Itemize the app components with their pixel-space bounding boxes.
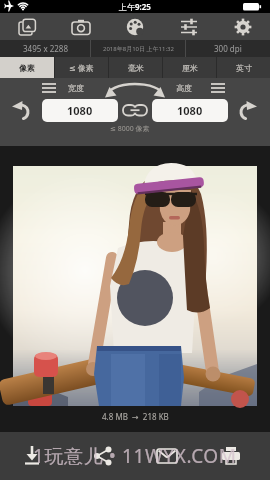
button[interactable] — [13, 166, 257, 406]
button[interactable] — [38, 80, 60, 96]
staticText: 3495 x 2288 — [23, 43, 68, 54]
staticText: 1玩意儿 • 11WYX.COM — [33, 443, 237, 469]
staticText: 像素 — [19, 63, 35, 73]
button[interactable]: 毫米 — [109, 57, 162, 78]
staticText: 4.8 MB → 218 KB — [102, 411, 169, 422]
button[interactable]: 1080 — [152, 99, 228, 122]
button[interactable] — [134, 432, 202, 480]
staticText: ≤ 8000 像素 — [110, 124, 150, 134]
button[interactable] — [216, 13, 270, 40]
button[interactable]: 300 dpi — [186, 40, 270, 57]
staticText: 300 dpi — [214, 43, 242, 54]
button[interactable]: 厘米 — [163, 57, 216, 78]
button[interactable] — [121, 102, 149, 120]
button[interactable]: 2018年8月10日 上午11:32 — [91, 40, 185, 57]
button[interactable] — [0, 432, 67, 480]
button[interactable] — [108, 13, 162, 40]
button[interactable]: 1080 — [42, 99, 118, 122]
button[interactable] — [54, 13, 108, 40]
button[interactable] — [207, 80, 229, 96]
staticText: 2018年8月10日 上午11:32 — [103, 45, 174, 53]
staticText: 厘米 — [182, 63, 198, 73]
staticText: 英寸 — [236, 63, 252, 73]
button[interactable] — [162, 13, 216, 40]
staticText: 高度 — [176, 83, 192, 93]
button[interactable]: ≤ 像素 — [55, 57, 108, 78]
button[interactable] — [6, 98, 34, 124]
button[interactable] — [67, 432, 134, 480]
button[interactable] — [202, 432, 270, 480]
button[interactable]: 像素 — [0, 57, 54, 78]
staticText: 毫米 — [128, 63, 144, 73]
staticText: 1080 — [177, 103, 203, 118]
staticText: 上午9:25 — [119, 1, 151, 12]
button[interactable] — [0, 13, 54, 40]
staticText: ≤ 像素 — [69, 62, 94, 73]
button[interactable]: 英寸 — [217, 57, 270, 78]
staticText: 宽度 — [68, 83, 84, 93]
button[interactable]: 3495 x 2288 — [0, 40, 90, 57]
staticText: 1080 — [67, 103, 93, 118]
button[interactable] — [106, 80, 164, 98]
button[interactable] — [235, 98, 263, 124]
